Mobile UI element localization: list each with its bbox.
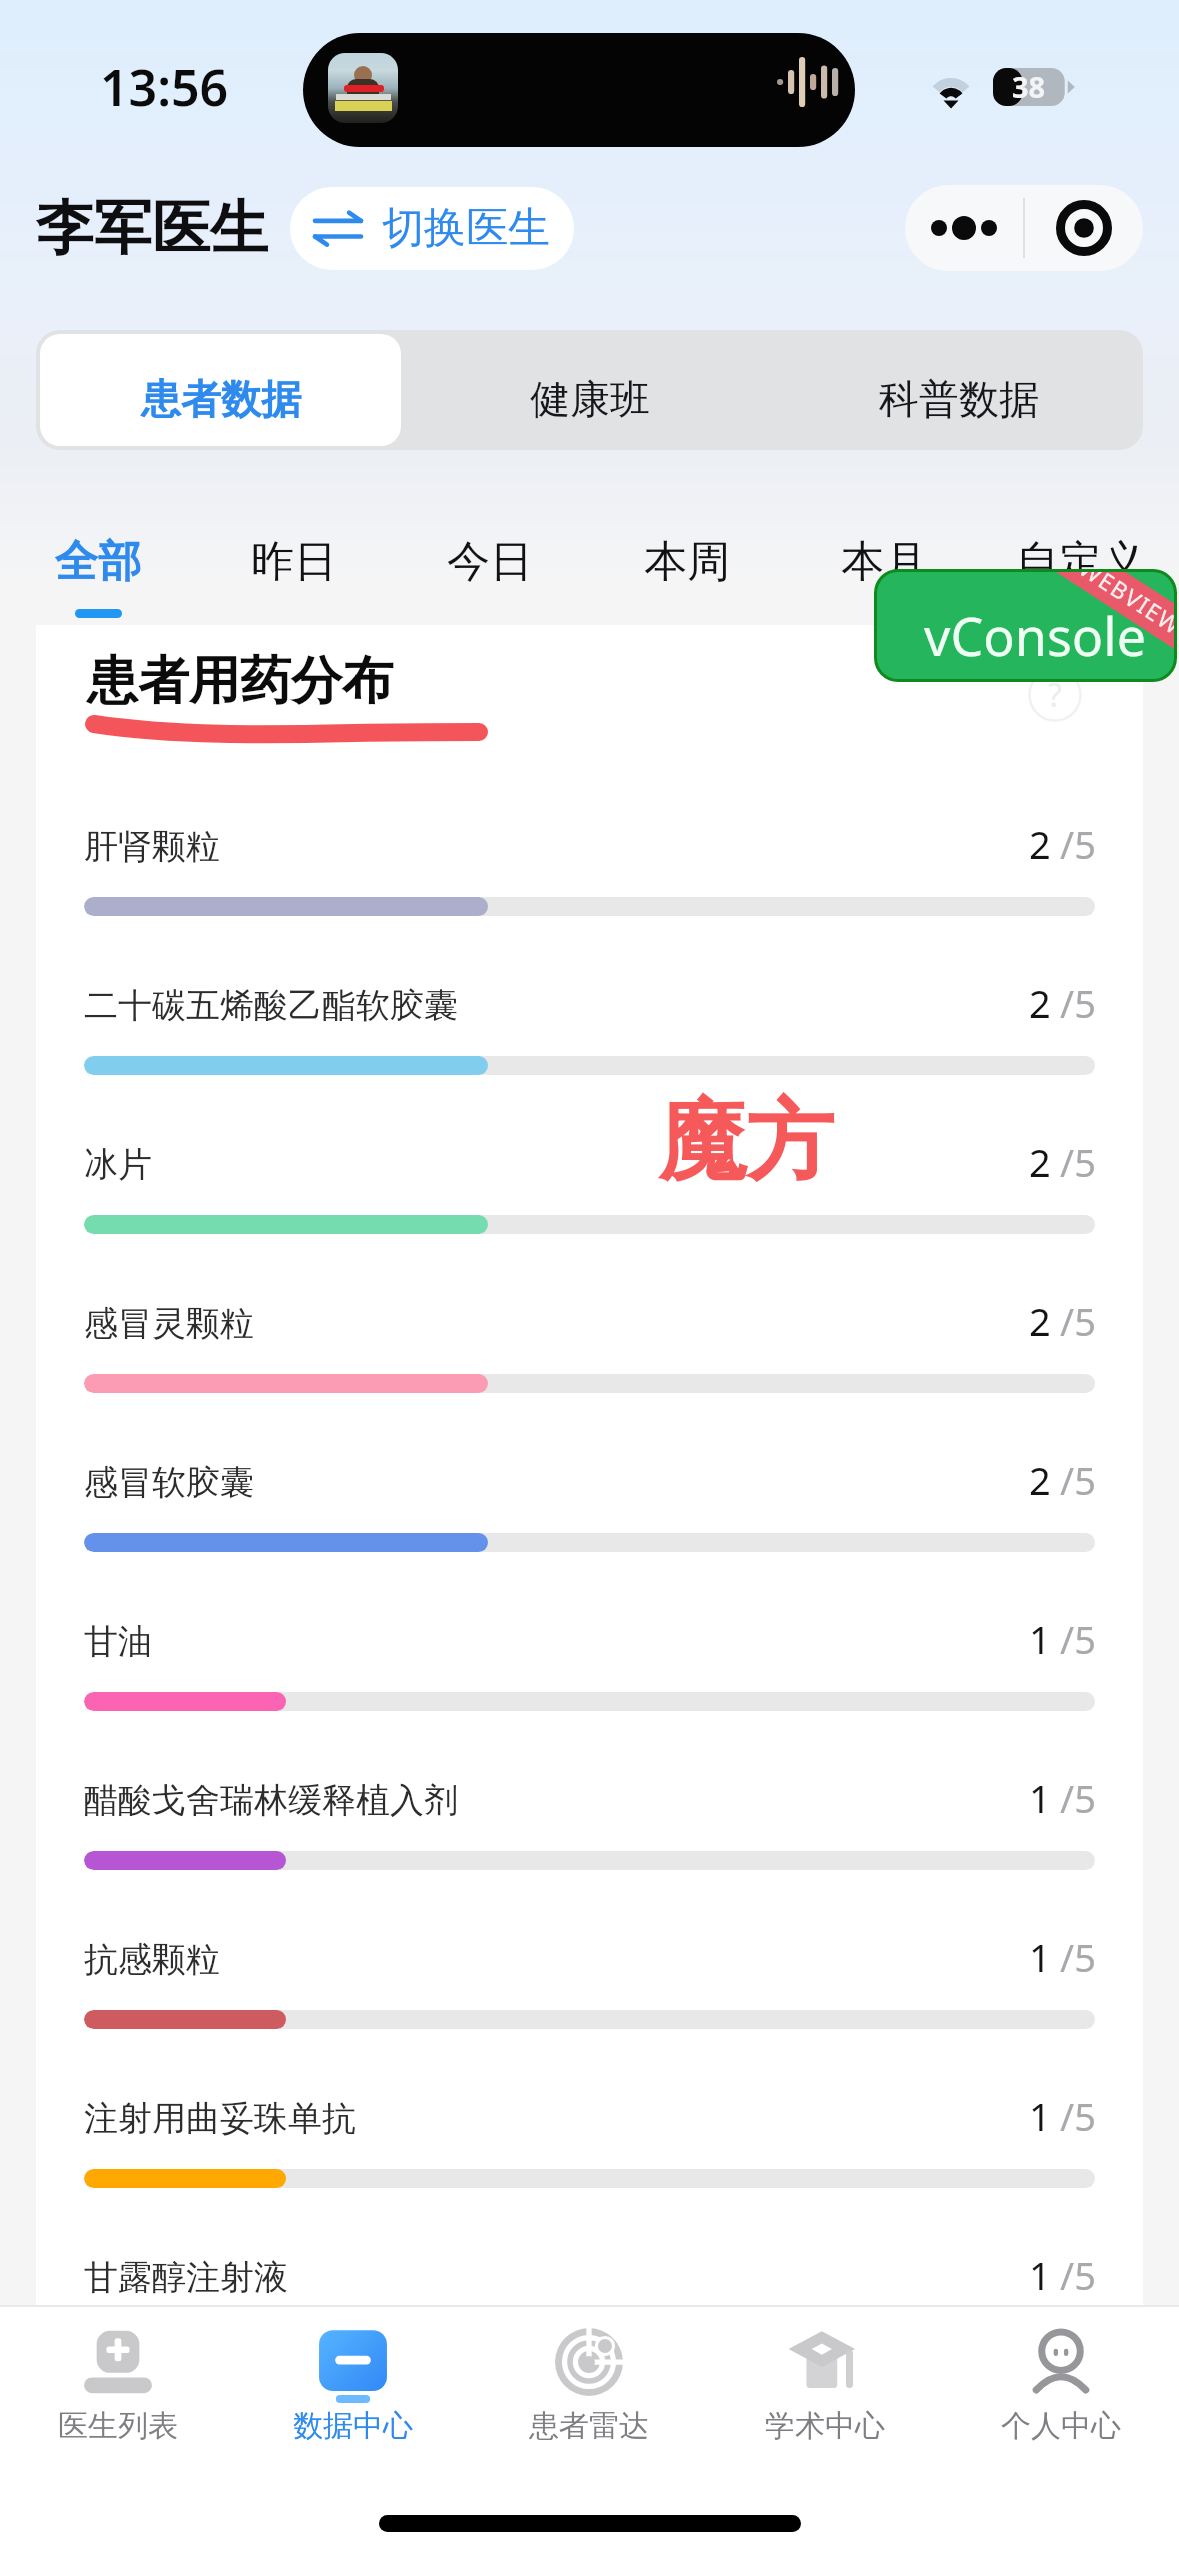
button[interactable]: Close mini program [1025, 185, 1143, 271]
staticText: 李军医生 [36, 192, 268, 265]
staticText: /5 [1060, 1613, 1096, 1665]
staticText: 甘油 [84, 1620, 152, 1663]
button[interactable]: 学术中心 [707, 2317, 943, 2467]
button[interactable]: 醋酸戈舍瑞林缓释植入剂 [36, 1779, 1143, 1909]
staticText: 本周 [644, 535, 730, 589]
staticText: 昨日 [251, 535, 337, 589]
button[interactable]: 全部 [0, 504, 196, 620]
staticText: 1 [1029, 1613, 1051, 1665]
staticText: 全部 [55, 535, 141, 589]
button[interactable]: 感冒灵颗粒 [36, 1302, 1143, 1432]
button[interactable]: 二十碳五烯酸乙酯软胶囊 [36, 984, 1143, 1114]
staticText: 个人中心 [1001, 2407, 1121, 2445]
staticText: 自定义 [1016, 535, 1145, 589]
button[interactable]: 今日 [392, 504, 588, 620]
staticText: 健康班 [530, 374, 650, 424]
staticText: /5 [1060, 1295, 1096, 1347]
staticText: 1 [1029, 2090, 1051, 2142]
staticText: 注射用曲妥珠单抗 [84, 2097, 356, 2140]
button[interactable]: 数据中心 [235, 2317, 471, 2467]
button[interactable]: 注射用曲妥珠单抗 [36, 2097, 1143, 2227]
button[interactable]: 冰片 [36, 1143, 1143, 1273]
staticText: 2 [1029, 1136, 1051, 1188]
staticText: 1 [1029, 1931, 1051, 1983]
staticText: 学术中心 [765, 2407, 885, 2445]
staticText: 感冒灵颗粒 [84, 1302, 254, 1345]
staticText: 医生列表 [58, 2407, 178, 2445]
staticText: ? [1048, 673, 1062, 717]
button[interactable]: 科普数据 [778, 334, 1139, 446]
button[interactable]: 本月 [785, 504, 982, 620]
button[interactable]: 昨日 [196, 504, 392, 620]
button[interactable]: 本周 [588, 504, 785, 620]
staticText: /5 [1060, 977, 1096, 1029]
button[interactable]: 抗感颗粒 [36, 1938, 1143, 2068]
staticText: /5 [1060, 1136, 1096, 1188]
staticText: WEBVIEW [1074, 572, 1174, 641]
staticText: 13:56 [100, 53, 229, 121]
staticText: /5 [1060, 1772, 1096, 1824]
button[interactable]: 自定义 [982, 504, 1179, 620]
staticText: 本月 [841, 535, 927, 589]
staticText: 1 [1029, 1772, 1051, 1824]
button[interactable]: 医生列表 [0, 2317, 235, 2467]
staticText: 二十碳五烯酸乙酯软胶囊 [84, 984, 458, 1027]
button[interactable]: 甘油 [36, 1620, 1143, 1750]
button[interactable]: vConsole webview debugger [877, 572, 1174, 679]
staticText: 2 [1029, 977, 1051, 1029]
button[interactable]: 切换医生 [290, 187, 574, 270]
staticText: /5 [1060, 818, 1096, 870]
staticText: /5 [1060, 2249, 1096, 2301]
button[interactable]: 甘露醇注射液 [36, 2256, 1143, 2386]
staticText: 感冒软胶囊 [84, 1461, 254, 1504]
button[interactable]: 患者雷达 [471, 2317, 707, 2467]
button[interactable]: More options [905, 185, 1023, 271]
staticText: 患者用药分布 [87, 649, 393, 713]
staticText: 患者雷达 [529, 2407, 649, 2445]
staticText: 甘露醇注射液 [84, 2256, 288, 2299]
staticText: 1 [1029, 2249, 1051, 2301]
button[interactable]: 个人中心 [943, 2317, 1179, 2467]
staticText: 醋酸戈舍瑞林缓释植入剂 [84, 1779, 458, 1822]
button[interactable]: 患者数据 [40, 334, 401, 446]
button[interactable]: 肝肾颗粒 [36, 825, 1143, 955]
staticText: 切换医生 [382, 202, 550, 255]
staticText: /5 [1060, 2090, 1096, 2142]
button[interactable]: Help [1028, 668, 1082, 722]
staticText: 魔方 [658, 1086, 834, 1197]
button[interactable]: 感冒软胶囊 [36, 1461, 1143, 1591]
staticText: 2 [1029, 818, 1051, 870]
staticText: 2 [1029, 1295, 1051, 1347]
staticText: 抗感颗粒 [84, 1938, 220, 1981]
staticText: 肝肾颗粒 [84, 825, 220, 868]
staticText: 患者数据 [141, 374, 301, 424]
staticText: 38 [1012, 67, 1046, 105]
staticText: vConsole [924, 600, 1146, 671]
staticText: 今日 [447, 535, 533, 589]
button[interactable]: 健康班 [409, 334, 770, 446]
staticText: 冰片 [84, 1143, 152, 1186]
staticText: 2 [1029, 1454, 1051, 1506]
staticText: 数据中心 [293, 2407, 413, 2445]
staticText: /5 [1060, 1454, 1096, 1506]
staticText: 科普数据 [879, 374, 1039, 424]
staticText: /5 [1060, 1931, 1096, 1983]
